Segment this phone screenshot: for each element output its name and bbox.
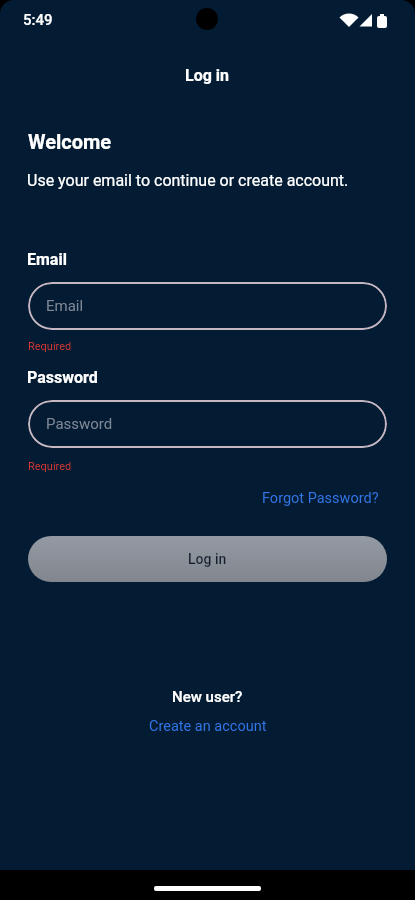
- button[interactable]: Create an account: [149, 718, 267, 735]
- staticText: Log in: [188, 551, 227, 567]
- button[interactable]: Password: [28, 400, 387, 448]
- staticText: Password: [46, 415, 113, 433]
- staticText: Password: [27, 368, 98, 387]
- button[interactable]: Email: [28, 282, 387, 330]
- staticText: Email: [27, 250, 67, 269]
- staticText: Welcome: [28, 130, 112, 153]
- button[interactable]: Log in: [28, 536, 387, 582]
- staticText: Required: [28, 340, 72, 353]
- staticText: Required: [28, 460, 72, 473]
- staticText: Email: [46, 297, 84, 315]
- staticText: New user?: [172, 688, 243, 706]
- staticText: 5:49: [23, 11, 53, 29]
- staticText: Log in: [185, 66, 230, 85]
- button[interactable]: Forgot Password?: [262, 490, 379, 507]
- staticText: Use your email to continue or create acc…: [27, 171, 349, 190]
